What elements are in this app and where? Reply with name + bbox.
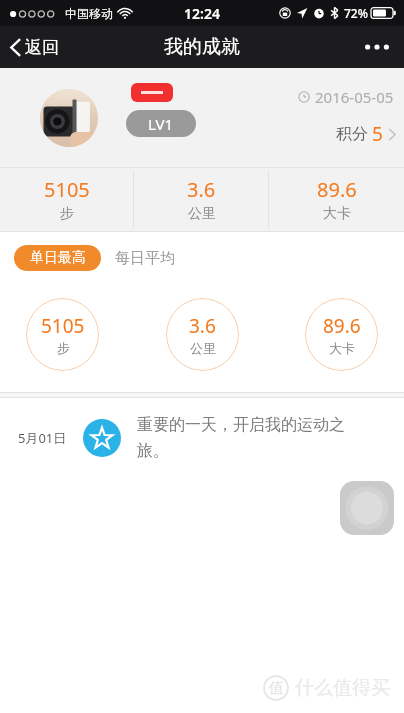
button[interactable]: 3.6 bbox=[166, 298, 239, 371]
button[interactable]: 89.6 bbox=[269, 168, 404, 231]
button[interactable]: 单日最高 bbox=[14, 245, 101, 271]
staticText: 大卡 bbox=[329, 340, 355, 356]
staticText: 公里 bbox=[190, 340, 216, 356]
staticText: 3.6 bbox=[187, 176, 216, 203]
button[interactable]: 89.6 bbox=[305, 298, 378, 371]
staticText: 3.6 bbox=[189, 313, 216, 339]
staticText: 89.6 bbox=[323, 313, 361, 339]
button[interactable]: 5105 bbox=[0, 168, 134, 231]
button[interactable]: LV1 bbox=[126, 110, 196, 137]
button[interactable]: 3.6 bbox=[134, 168, 269, 231]
staticText: 5 bbox=[372, 121, 383, 147]
staticText: 步 bbox=[57, 340, 70, 356]
staticText: 5105 bbox=[41, 313, 85, 339]
staticText: 步 bbox=[60, 205, 74, 223]
button[interactable]: Record activity bbox=[340, 481, 394, 535]
staticText: 2016-05-05 bbox=[315, 87, 394, 107]
staticText: 5105 bbox=[44, 176, 90, 203]
staticText: 返回 bbox=[25, 37, 59, 58]
button[interactable]: LV1 bbox=[0, 68, 404, 167]
staticText: 每日平均 bbox=[115, 249, 175, 268]
staticText: 单日最高 bbox=[30, 249, 86, 267]
staticText: 什么值得买 bbox=[295, 676, 390, 700]
button[interactable]: 每日平均 bbox=[101, 243, 189, 274]
staticText: 公里 bbox=[188, 205, 216, 223]
staticText: 我的成就 bbox=[164, 35, 240, 59]
staticText: 大卡 bbox=[323, 205, 351, 223]
button[interactable]: 积分 bbox=[330, 117, 404, 151]
staticText: 5月01日 bbox=[18, 429, 67, 447]
staticText: 中国移动 bbox=[65, 6, 113, 21]
button[interactable]: More options bbox=[350, 34, 404, 60]
button[interactable]: 5月01日 bbox=[0, 398, 404, 478]
staticText: 积分 bbox=[336, 124, 368, 144]
staticText: 89.6 bbox=[317, 176, 357, 203]
button[interactable]: 5105 bbox=[26, 298, 99, 371]
staticText: LV1 bbox=[148, 114, 174, 134]
staticText: 72% bbox=[344, 5, 368, 21]
staticText: 值 bbox=[269, 679, 284, 698]
button[interactable]: 返回 bbox=[0, 31, 69, 64]
staticText: 12:24 bbox=[184, 4, 220, 23]
staticText: 重要的一天，开启我的运动之 旅。 bbox=[137, 415, 345, 461]
